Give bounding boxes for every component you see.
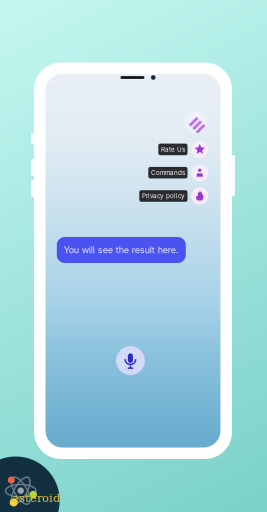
button[interactable]: Rate Us: [158, 141, 208, 158]
button[interactable]: Start voice recording: [115, 345, 146, 376]
button[interactable]: Commands: [148, 164, 208, 181]
staticText: You will see the result here.: [64, 244, 179, 255]
button[interactable]: Privacy policy: [139, 187, 208, 205]
staticText: Privacy policy: [142, 192, 185, 200]
staticText: asteroid: [12, 492, 60, 505]
staticText: Rate Us: [161, 146, 185, 153]
button[interactable]: Menu: [183, 110, 208, 135]
staticText: Commands: [151, 169, 185, 176]
